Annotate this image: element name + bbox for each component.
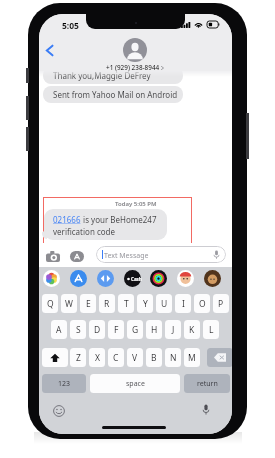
staticText: I: [182, 298, 185, 310]
button[interactable]: Emoji: [52, 404, 65, 417]
staticText: Z: [76, 352, 81, 364]
staticText: T: [124, 298, 129, 310]
button[interactable]: J: [165, 320, 181, 339]
button[interactable]: D: [89, 320, 105, 339]
button[interactable]: Y: [137, 294, 153, 313]
button[interactable]: I: [175, 294, 191, 313]
staticText: N: [170, 352, 177, 364]
button[interactable]: A: [51, 320, 67, 339]
button[interactable]: H: [146, 320, 162, 339]
staticText: V: [132, 352, 138, 364]
staticText: Thank you,Maggie DeFrey: [53, 70, 151, 81]
staticText: E: [86, 298, 91, 310]
button[interactable]: Shift: [42, 348, 68, 367]
button[interactable]: P: [213, 294, 229, 313]
staticText: G: [132, 324, 139, 336]
staticText: K: [189, 324, 195, 336]
staticText: H: [151, 324, 158, 336]
button[interactable]: R: [99, 294, 115, 313]
staticText: Q: [47, 298, 54, 310]
button[interactable]: F: [108, 320, 124, 339]
staticText: C: [113, 352, 119, 364]
button[interactable]: Thank you,Maggie DeFrey: [43, 67, 183, 84]
staticText: 5:05: [62, 20, 79, 32]
button[interactable]: App: [177, 270, 194, 287]
button[interactable]: +1 (929) 238-8944: [105, 38, 165, 72]
button[interactable]: App: [70, 270, 87, 287]
button[interactable]: Numbers: [42, 374, 86, 393]
staticText: B: [151, 352, 157, 364]
button[interactable]: App: [43, 270, 60, 287]
button[interactable]: L: [203, 320, 219, 339]
staticText: Text Message: [104, 251, 149, 261]
staticText: Sent from Yahoo Mail on Android: [53, 89, 178, 100]
staticText: U: [161, 298, 168, 310]
staticText: R: [104, 298, 110, 310]
staticText: P: [218, 298, 224, 310]
button[interactable]: B: [146, 348, 162, 367]
button[interactable]: W: [61, 294, 77, 313]
button[interactable]: Z: [70, 348, 86, 367]
button[interactable]: T: [118, 294, 134, 313]
staticText: Y: [143, 298, 148, 310]
staticText: Today 5:05 PM: [115, 200, 157, 208]
button[interactable]: space: [90, 374, 180, 393]
button[interactable]: Dictate: [202, 404, 210, 416]
button[interactable]: 021666: [44, 209, 167, 240]
staticText: space: [126, 379, 145, 389]
button[interactable]: Dictate: [213, 250, 220, 260]
button[interactable]: K: [184, 320, 200, 339]
staticText: Cash: [131, 276, 142, 282]
button[interactable]: U: [156, 294, 172, 313]
button[interactable]: Camera: [45, 249, 61, 263]
button[interactable]: App Store: [69, 249, 85, 263]
button[interactable]: O: [194, 294, 210, 313]
staticText: L: [209, 324, 214, 336]
button[interactable]: S: [70, 320, 86, 339]
button[interactable]: App: [124, 270, 141, 287]
button[interactable]: Backspace: [207, 348, 232, 367]
staticText: J: [172, 324, 175, 336]
button[interactable]: return: [184, 374, 230, 393]
button[interactable]: X: [89, 348, 105, 367]
staticText: X: [95, 352, 100, 364]
button[interactable]: C: [108, 348, 124, 367]
button[interactable]: G: [127, 320, 143, 339]
staticText: S: [76, 324, 81, 336]
button[interactable]: Q: [42, 294, 58, 313]
staticText: M: [188, 352, 196, 364]
button[interactable]: App: [97, 270, 114, 287]
staticText: verification code: [53, 226, 116, 237]
button[interactable]: Text Message: [96, 246, 226, 263]
staticText: is your BeHome247: [81, 214, 157, 225]
button[interactable]: App: [204, 270, 221, 287]
staticText: O: [199, 298, 206, 310]
button[interactable]: N: [165, 348, 181, 367]
button[interactable]: App: [150, 270, 167, 287]
button[interactable]: M: [184, 348, 200, 367]
button[interactable]: Back: [41, 39, 58, 61]
staticText: 021666: [53, 214, 81, 225]
staticText: +1 (929) 238-8944: [106, 63, 160, 72]
button[interactable]: Sent from Yahoo Mail on Android: [43, 86, 183, 103]
staticText: 123: [58, 379, 71, 389]
staticText: D: [94, 324, 101, 336]
staticText: F: [114, 324, 119, 336]
button[interactable]: E: [80, 294, 96, 313]
staticText: return: [197, 379, 218, 389]
staticText: A: [56, 324, 62, 336]
staticText: W: [65, 298, 73, 310]
button[interactable]: V: [127, 348, 143, 367]
